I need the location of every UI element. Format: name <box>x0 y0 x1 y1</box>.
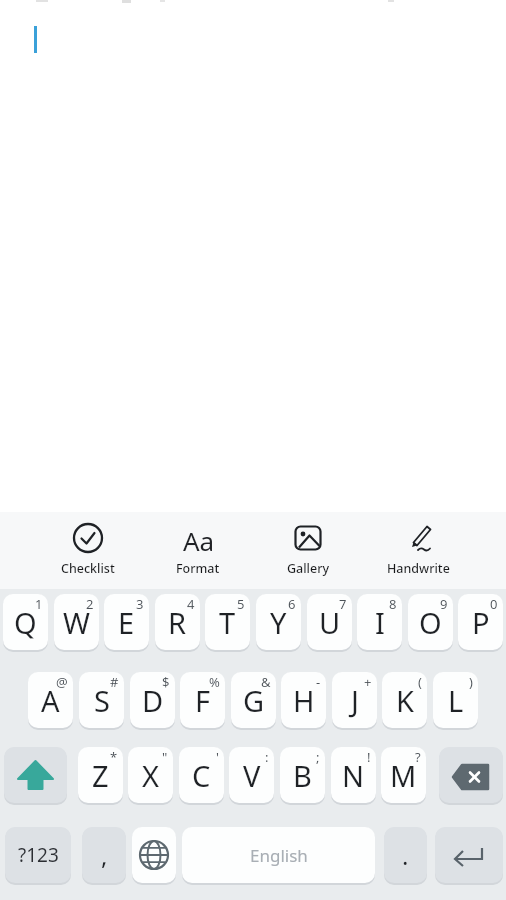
staticText: 9 <box>440 595 448 613</box>
staticText: : <box>265 748 269 766</box>
button[interactable] <box>439 747 503 803</box>
button[interactable] <box>435 827 503 883</box>
button[interactable]: J <box>332 672 377 728</box>
staticText: " <box>162 748 168 766</box>
button[interactable]: Handwrite <box>363 512 473 589</box>
staticText: S <box>94 681 110 720</box>
staticText: P <box>472 603 490 642</box>
staticText: 6 <box>288 595 296 613</box>
staticText: Gallery <box>287 560 330 577</box>
staticText: * <box>110 748 118 766</box>
staticText: Format <box>176 560 220 577</box>
staticText: ) <box>469 673 473 691</box>
staticText: ; <box>316 748 320 766</box>
button[interactable]: U <box>307 594 352 650</box>
staticText: T <box>219 603 236 642</box>
staticText: B <box>293 756 312 795</box>
button[interactable]: V <box>229 747 274 803</box>
button[interactable]: N <box>331 747 376 803</box>
staticText: ' <box>216 748 219 766</box>
staticText: K <box>396 681 414 720</box>
staticText: 2 <box>86 595 94 613</box>
button[interactable]: O <box>408 594 453 650</box>
staticText: 3 <box>136 595 144 613</box>
button[interactable]: K <box>382 672 427 728</box>
staticText: O <box>419 603 442 642</box>
button[interactable]: C <box>179 747 224 803</box>
staticText: 5 <box>237 595 245 613</box>
staticText: U <box>319 603 341 642</box>
staticText: G <box>243 681 265 720</box>
staticText: # <box>110 673 119 691</box>
button[interactable]: Q <box>3 594 48 650</box>
staticText: E <box>118 603 135 642</box>
button[interactable]: R <box>155 594 200 650</box>
staticText: , <box>101 839 108 872</box>
button[interactable]: G <box>231 672 276 728</box>
staticText: D <box>142 681 164 720</box>
button[interactable]: M <box>381 747 426 803</box>
button[interactable]: X <box>128 747 173 803</box>
staticText: C <box>192 756 211 795</box>
button[interactable]: Y <box>256 594 301 650</box>
staticText: $ <box>162 673 170 691</box>
staticText: English <box>250 844 308 867</box>
staticText: F <box>195 681 211 720</box>
staticText: W <box>63 603 90 642</box>
staticText: H <box>293 681 315 720</box>
staticText: ? <box>415 748 421 766</box>
staticText: V <box>243 756 261 795</box>
staticText: Z <box>92 756 109 795</box>
button[interactable]: . <box>384 827 427 883</box>
staticText: ! <box>367 748 371 766</box>
staticText: J <box>351 681 359 720</box>
staticText: 8 <box>389 595 397 613</box>
button[interactable] <box>4 747 67 803</box>
button[interactable]: W <box>54 594 99 650</box>
button[interactable]: Checklist <box>33 512 143 589</box>
button[interactable]: H <box>281 672 326 728</box>
staticText: X <box>142 756 159 795</box>
button[interactable]: Z <box>78 747 123 803</box>
staticText: + <box>364 673 372 691</box>
button[interactable]: S <box>79 672 124 728</box>
button[interactable]: I <box>357 594 402 650</box>
staticText: Handwrite <box>387 560 450 577</box>
staticText: M <box>390 756 417 795</box>
staticText: L <box>448 681 464 720</box>
button[interactable]: T <box>205 594 250 650</box>
staticText: Aa <box>183 523 213 553</box>
staticText: . <box>402 839 409 872</box>
button[interactable]: Gallery <box>253 512 363 589</box>
button[interactable]: ?123 <box>5 827 71 883</box>
staticText: % <box>209 673 220 691</box>
button[interactable]: Aa <box>143 512 253 589</box>
staticText: 4 <box>187 595 195 613</box>
staticText: 1 <box>35 595 43 613</box>
button[interactable]: D <box>130 672 175 728</box>
staticText: I <box>375 603 385 642</box>
button[interactable]: B <box>280 747 325 803</box>
button[interactable]: English <box>182 827 375 883</box>
button[interactable]: A <box>28 672 73 728</box>
staticText: - <box>316 673 321 691</box>
button[interactable] <box>132 827 176 883</box>
staticText: 7 <box>339 595 347 613</box>
staticText: Checklist <box>61 560 115 577</box>
button[interactable]: F <box>180 672 225 728</box>
staticText: R <box>168 603 187 642</box>
staticText: & <box>261 673 271 691</box>
staticText: ( <box>418 673 422 691</box>
button[interactable]: E <box>104 594 149 650</box>
staticText: Y <box>270 603 287 642</box>
staticText: N <box>342 756 365 795</box>
button[interactable]: P <box>458 594 503 650</box>
staticText: Q <box>14 603 37 642</box>
staticText: 0 <box>490 595 498 613</box>
staticText: @ <box>56 673 68 691</box>
staticText: ?123 <box>18 842 59 868</box>
staticText: A <box>41 681 60 720</box>
button[interactable]: L <box>433 672 478 728</box>
button[interactable]: , <box>82 827 126 883</box>
